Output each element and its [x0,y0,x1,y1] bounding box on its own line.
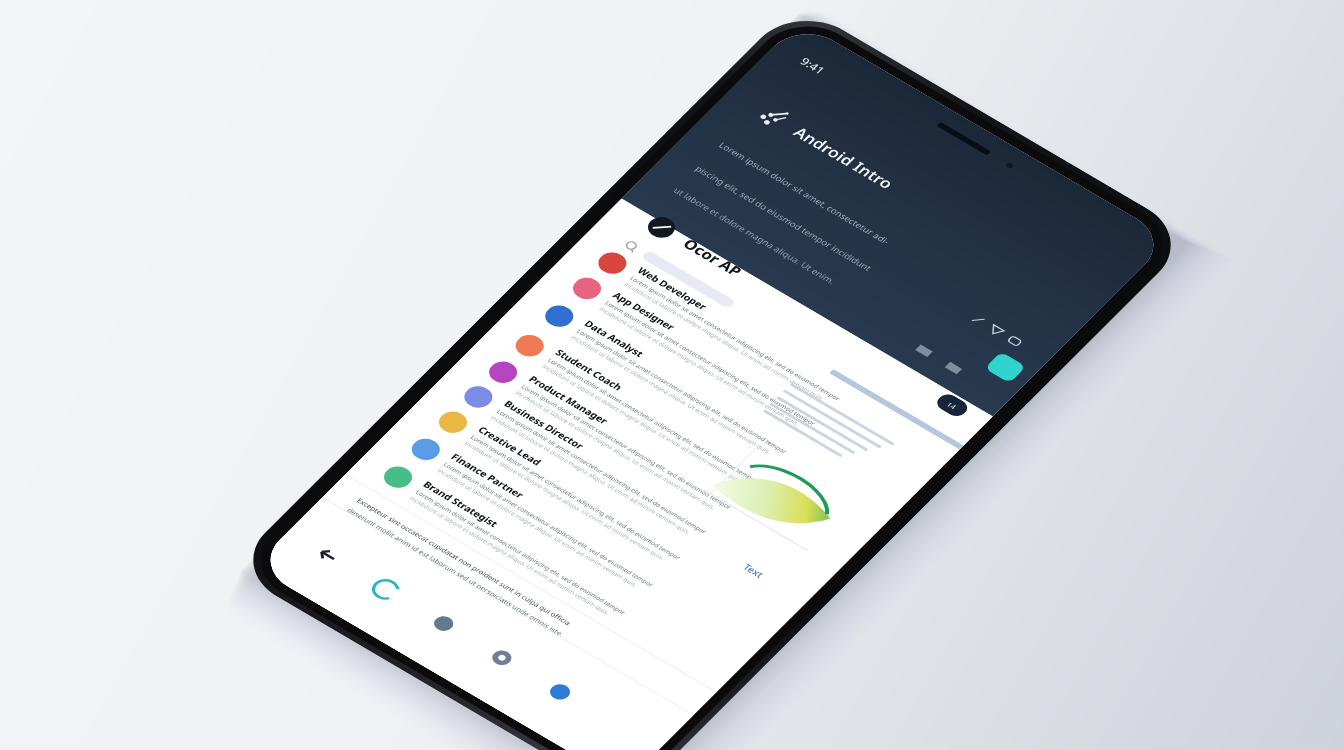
button[interactable]: Search [613,232,745,316]
button[interactable]: Student Coach [481,311,880,557]
button[interactable]: App Designer [539,255,937,499]
button[interactable]: Profile [526,666,594,718]
staticText: Lorem ipsum dolor sit amet consectetur a… [519,383,733,511]
staticText: Creative Lead [475,424,544,468]
staticText: ut labore et dolore magna aliqua. Ut eni… [671,185,839,287]
staticText: incididunt ut labore et dolore magna ali… [597,305,801,428]
staticText: Excepteur sint occaecat cupidatat non pr… [355,496,573,627]
button[interactable]: Search [410,598,477,649]
staticText: Android Intro [789,123,898,193]
staticText: Lorem ipsum dolor sit amet consectetur a… [468,434,682,562]
staticText: Lorem ipsum dolor sit amet consectetur a… [546,357,760,485]
staticText: incididunt ut labore et dolore magna ali… [462,440,667,562]
button[interactable]: Creative Lead [405,388,803,633]
staticText: Ocor AP [679,235,747,280]
staticText: piscing elit, sed do eiusmod tempor inci… [693,163,875,273]
staticText: incididunt ut labore et dolore magna ali… [539,363,744,485]
staticText: deserunt mollit anim id est laborum sed … [345,505,567,638]
staticText: incididunt ut labore et dolore magna ali… [568,334,773,456]
staticText: Text [740,561,767,580]
button[interactable]: Product Manager [456,339,852,582]
staticText: incididunt ut labore et dolore magna ali… [407,495,612,617]
button[interactable]: Back [294,530,361,581]
button[interactable]: Quick action [984,351,1026,383]
button[interactable]: Home [352,564,419,615]
button[interactable]: Messages [468,632,535,683]
staticText: Product Manager [526,373,611,426]
staticText: Natus error sit voluptatem accusantium d… [336,515,557,648]
button[interactable]: Web Developer [565,230,961,473]
staticText: incididunt ut labore et dolore magna ali… [435,467,640,589]
staticText: Lorem ipsum dolor sit amet consectetur a… [494,408,708,536]
staticText: Business Director [501,398,587,452]
staticText: Lorem ipsum dolor sit amet consectetur a… [441,461,655,589]
staticText: Lorem ipsum dolor sit amet consectetur a… [603,299,817,427]
staticText: incididunt ut labore et dolore magna ali… [622,281,826,403]
button[interactable]: Ocor AP [634,206,757,288]
staticText: Finance Partner [448,451,527,501]
button[interactable]: Brand Strategist [349,443,748,688]
button[interactable]: Count [933,391,972,419]
staticText: incididunt ut labore et dolore magna ali… [488,414,693,536]
staticText: incididunt ut labore et dolore magna ali… [513,389,717,512]
button[interactable]: Finance Partner [377,415,776,661]
staticText: Data Analyst [582,317,647,360]
button[interactable]: Business Director [431,364,827,606]
button[interactable]: Data Analyst [509,280,911,529]
staticText: Lorem ipsum dolor sit amet consectetur a… [628,275,842,403]
staticText: 14 [945,400,959,411]
staticText: Brand Strategist [421,478,501,530]
staticText: Lorem ipsum dolor sit amet consectetur a… [574,328,789,456]
staticText: Lorem ipsum dolor sit amet consectetur a… [413,489,627,617]
staticText: Lorem ipsum dolor sit amet, consectetur … [716,140,893,247]
staticText: 9:41 [797,54,828,77]
staticText: App Designer [610,289,678,333]
staticText: Student Coach [553,346,626,393]
staticText: Web Developer [635,264,710,312]
